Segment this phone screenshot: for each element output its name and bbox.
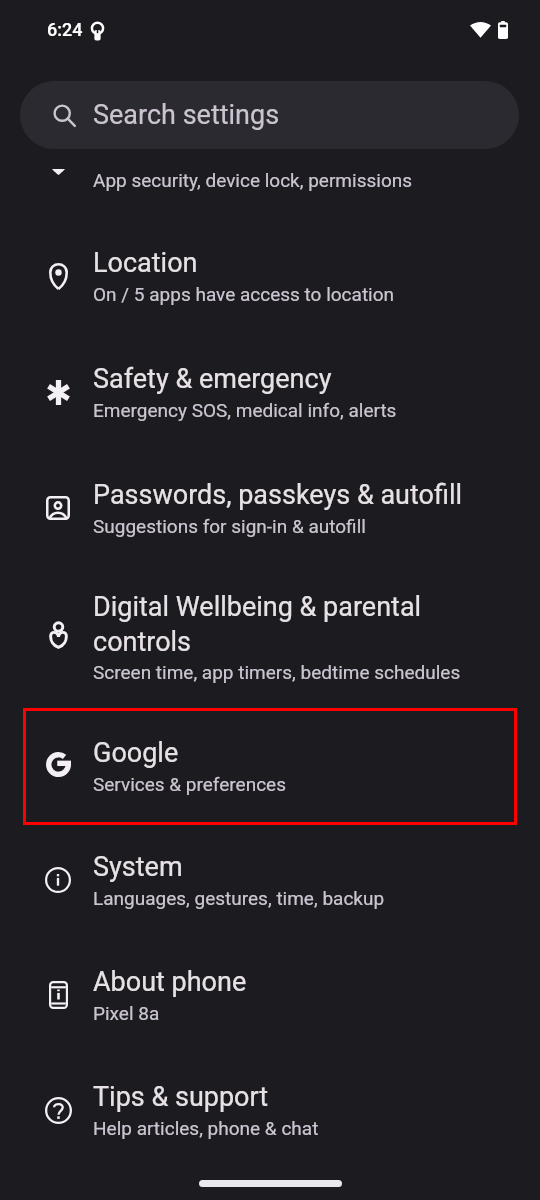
button[interactable]: Search settings (20, 81, 519, 149)
staticText: Tips & support (93, 1081, 269, 1113)
button[interactable]: About phone (0, 937, 540, 1053)
staticText: System (93, 851, 183, 883)
staticText: Search settings (93, 99, 280, 131)
button[interactable]: Safety & emergency (0, 334, 540, 450)
other: Flashlight (91, 22, 104, 41)
button[interactable]: Location (0, 218, 540, 334)
button[interactable]: System (0, 822, 540, 938)
staticText: App security, device lock, permissions (93, 169, 413, 191)
button[interactable]: Google (0, 708, 540, 824)
staticText: Pixel 8a (93, 1002, 160, 1024)
staticText: Location (93, 247, 198, 279)
staticText: Emergency SOS, medical info, alerts (93, 399, 397, 421)
button[interactable]: Passwords, passkeys & autofill (0, 450, 540, 566)
button[interactable]: App security, device lock, permissions (0, 150, 540, 208)
staticText: Screen time, app timers, bedtime schedul… (93, 661, 461, 683)
staticText: Help articles, phone & chat (93, 1117, 319, 1139)
staticText: Google (93, 737, 179, 769)
button[interactable]: Tips & support (0, 1052, 540, 1168)
staticText: Languages, gestures, time, backup (93, 887, 385, 909)
staticText: Suggestions for sign-in & autofill (93, 515, 366, 537)
staticText: Passwords, passkeys & autofill (93, 479, 463, 511)
button[interactable]: Digital Wellbeing & parental controls (0, 566, 540, 708)
staticText: On / 5 apps have access to location (93, 283, 395, 305)
staticText: Safety & emergency (93, 363, 332, 395)
staticText: 6:24 (47, 19, 83, 40)
staticText: About phone (93, 966, 247, 998)
staticText: Digital Wellbeing & parental controls (93, 591, 494, 657)
staticText: Services & preferences (93, 773, 286, 795)
